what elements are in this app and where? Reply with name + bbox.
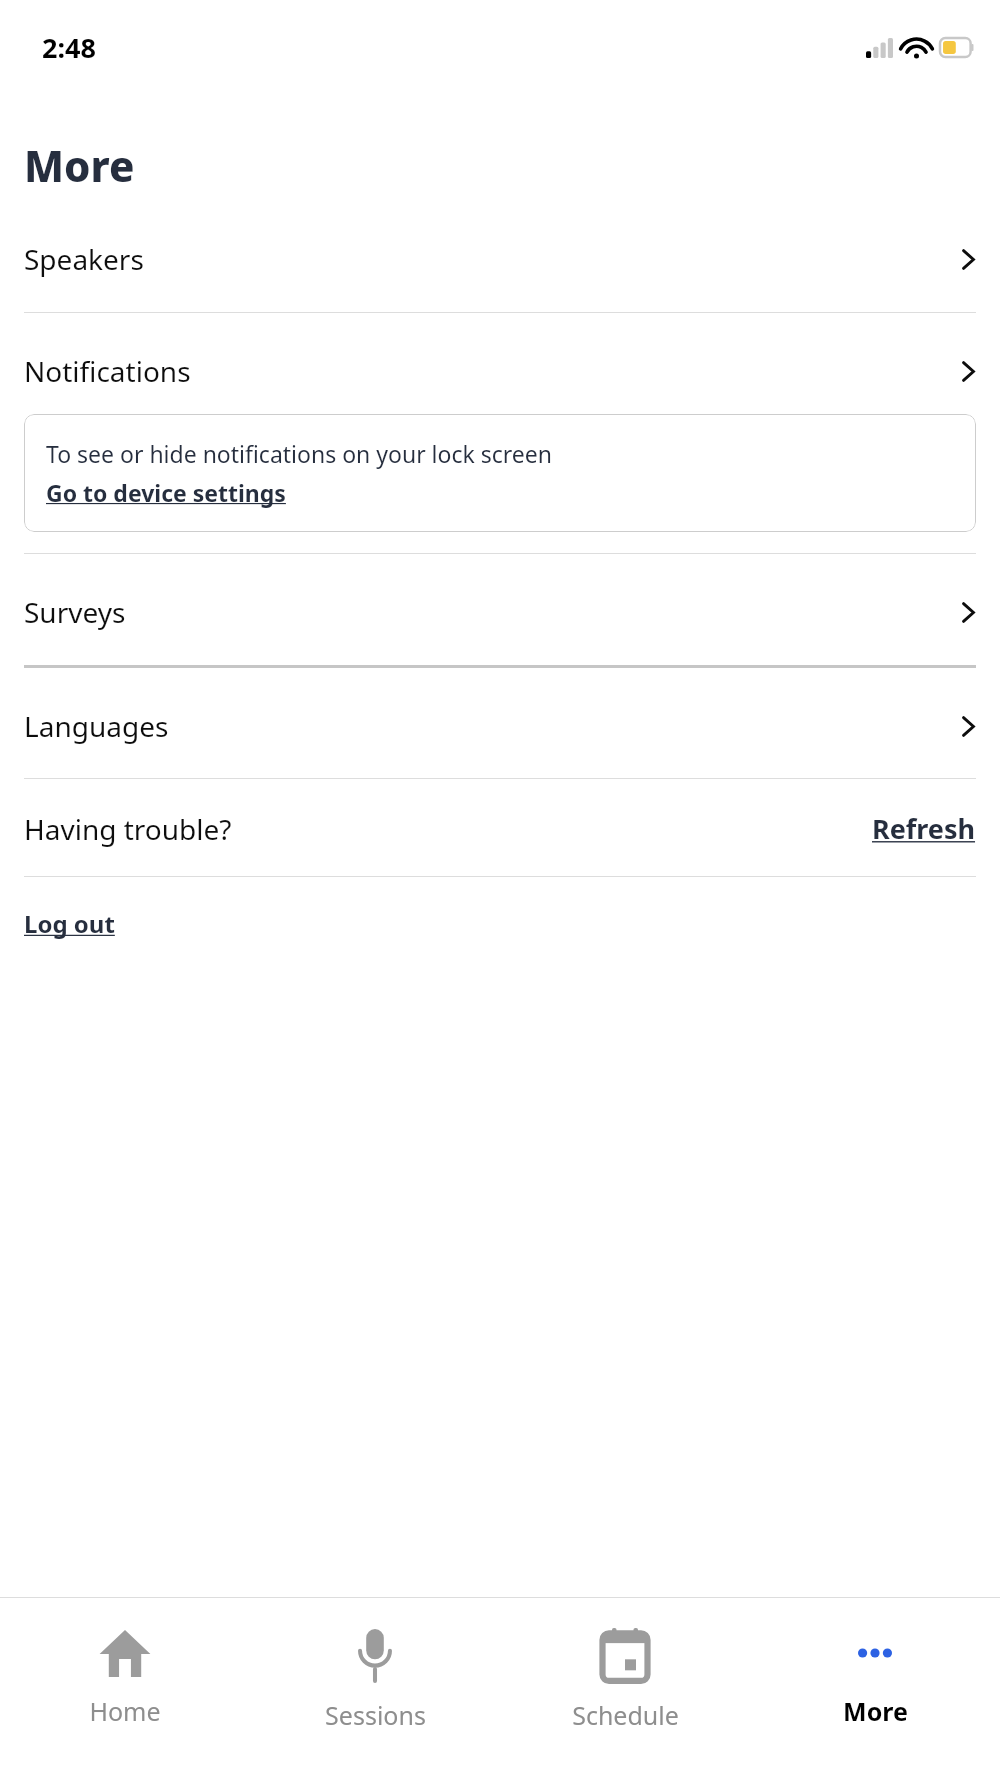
staticText: Surveys — [24, 593, 126, 631]
other: Home — [98, 1628, 152, 1678]
button[interactable]: Surveys — [24, 585, 976, 639]
staticText: Having trouble? — [24, 810, 232, 848]
button[interactable]: Notifications — [24, 344, 976, 398]
button[interactable]: Home — [0, 1598, 250, 1778]
staticText: Log out — [24, 907, 115, 940]
button[interactable]: Schedule — [500, 1598, 750, 1778]
other: More — [848, 1628, 902, 1678]
staticText: Refresh — [872, 810, 976, 847]
staticText: Sessions — [325, 1698, 426, 1732]
staticText: Schedule — [572, 1698, 679, 1732]
staticText: Notifications — [24, 352, 191, 390]
other: Schedule — [600, 1628, 650, 1682]
other: Sessions — [353, 1628, 397, 1682]
button[interactable]: Refresh — [872, 808, 976, 849]
staticText: Home — [89, 1694, 161, 1728]
button[interactable]: More — [750, 1598, 1000, 1778]
button[interactable]: To see or hide notifications on your loc… — [24, 414, 976, 532]
button[interactable]: Speakers — [24, 232, 976, 286]
staticText: More — [843, 1694, 908, 1728]
staticText: More — [24, 137, 135, 194]
staticText: To see or hide notifications on your loc… — [46, 438, 553, 469]
staticText: Languages — [24, 707, 169, 745]
staticText: 2:48 — [42, 29, 96, 66]
button[interactable]: Languages — [24, 699, 976, 753]
staticText: Speakers — [24, 240, 144, 278]
button[interactable]: Sessions — [250, 1598, 500, 1778]
staticText: Go to device settings — [46, 477, 286, 508]
button[interactable]: Log out — [24, 902, 115, 945]
